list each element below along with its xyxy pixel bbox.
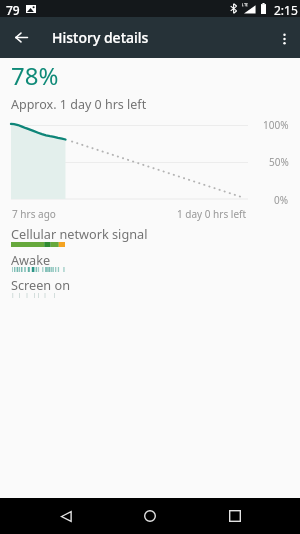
staticText: 7 hrs ago	[12, 207, 56, 221]
button[interactable]: Back	[45, 498, 88, 534]
staticText: Awake	[11, 251, 51, 268]
button[interactable]: More options	[269, 18, 299, 59]
staticText: 0%	[274, 193, 289, 207]
staticText: Cellular network signal	[11, 225, 148, 242]
staticText: Approx. 1 day 0 hrs left	[11, 96, 147, 113]
button[interactable]: Home	[128, 498, 171, 534]
staticText: 1 day 0 hrs left	[177, 207, 247, 221]
button[interactable]: Recent apps	[213, 498, 256, 534]
staticText: 50%	[269, 155, 289, 169]
staticText: 2:15	[274, 2, 298, 18]
staticText: 100%	[263, 118, 289, 132]
staticText: History details	[52, 28, 149, 47]
staticText: 79	[6, 2, 20, 18]
staticText: 78%	[11, 59, 59, 92]
staticText: Screen on	[11, 276, 71, 293]
button[interactable]: Navigate up	[7, 17, 35, 58]
